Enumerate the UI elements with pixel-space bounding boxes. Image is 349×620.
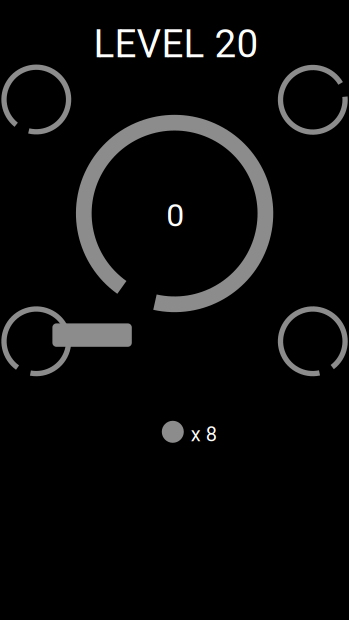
staticText: LEVEL 20 [93,21,258,67]
button[interactable]: Lever [52,323,132,347]
button[interactable]: Bottom right ring [278,306,348,376]
button[interactable]: Bottom left ring [1,306,71,376]
staticText: x 8 [191,423,217,446]
button[interactable]: Top left ring [1,64,71,134]
staticText: 0 [166,196,184,234]
button[interactable]: Dial, 0 [75,114,274,313]
button[interactable]: Top right ring [278,65,348,135]
